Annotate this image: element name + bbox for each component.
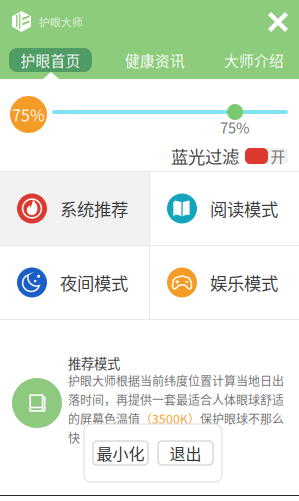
staticText: 保护眼球不那么	[200, 410, 284, 427]
staticText: 最小化	[96, 441, 144, 465]
staticText: 护眼大师	[39, 14, 83, 29]
button[interactable]: 开	[245, 148, 288, 164]
staticText: 大师介绍	[224, 49, 284, 71]
staticText: 护眼大师根据当前纬度位置计算当地日出	[68, 372, 284, 389]
staticText: 蓝光过滤	[171, 143, 239, 169]
staticText: 健康资讯	[125, 49, 185, 71]
button[interactable]: 大师介绍	[219, 48, 289, 72]
button[interactable]: 娱乐模式	[150, 246, 299, 319]
staticText: 夜间模式	[60, 270, 128, 295]
button[interactable]: 退出	[158, 441, 213, 465]
staticText: 系统推荐	[60, 196, 128, 221]
staticText: 落时间，再提供一套最适合人体眼球舒适	[68, 391, 284, 408]
staticText: 娱乐模式	[210, 270, 278, 295]
staticText: 退出	[169, 441, 201, 465]
button[interactable]: 最小化	[93, 441, 148, 465]
button[interactable]: 阅读模式	[150, 172, 299, 245]
button[interactable]: 夜间模式	[0, 246, 149, 319]
staticText: 阅读模式	[210, 196, 278, 221]
staticText: 75%	[12, 103, 45, 126]
button[interactable]: 护眼首页	[9, 48, 92, 72]
button[interactable]: 关闭	[264, 8, 292, 36]
staticText: 开	[270, 145, 285, 167]
staticText: 推荐模式	[68, 353, 120, 373]
staticText: 的屏幕色温值	[68, 410, 140, 427]
staticText: 护眼首页	[20, 49, 80, 71]
staticText: 快	[68, 429, 80, 446]
staticText: （3500K）	[140, 410, 200, 427]
button[interactable]: 健康资讯	[120, 48, 190, 72]
button[interactable]: 系统推荐	[0, 172, 149, 245]
staticText: 75%	[220, 116, 250, 138]
